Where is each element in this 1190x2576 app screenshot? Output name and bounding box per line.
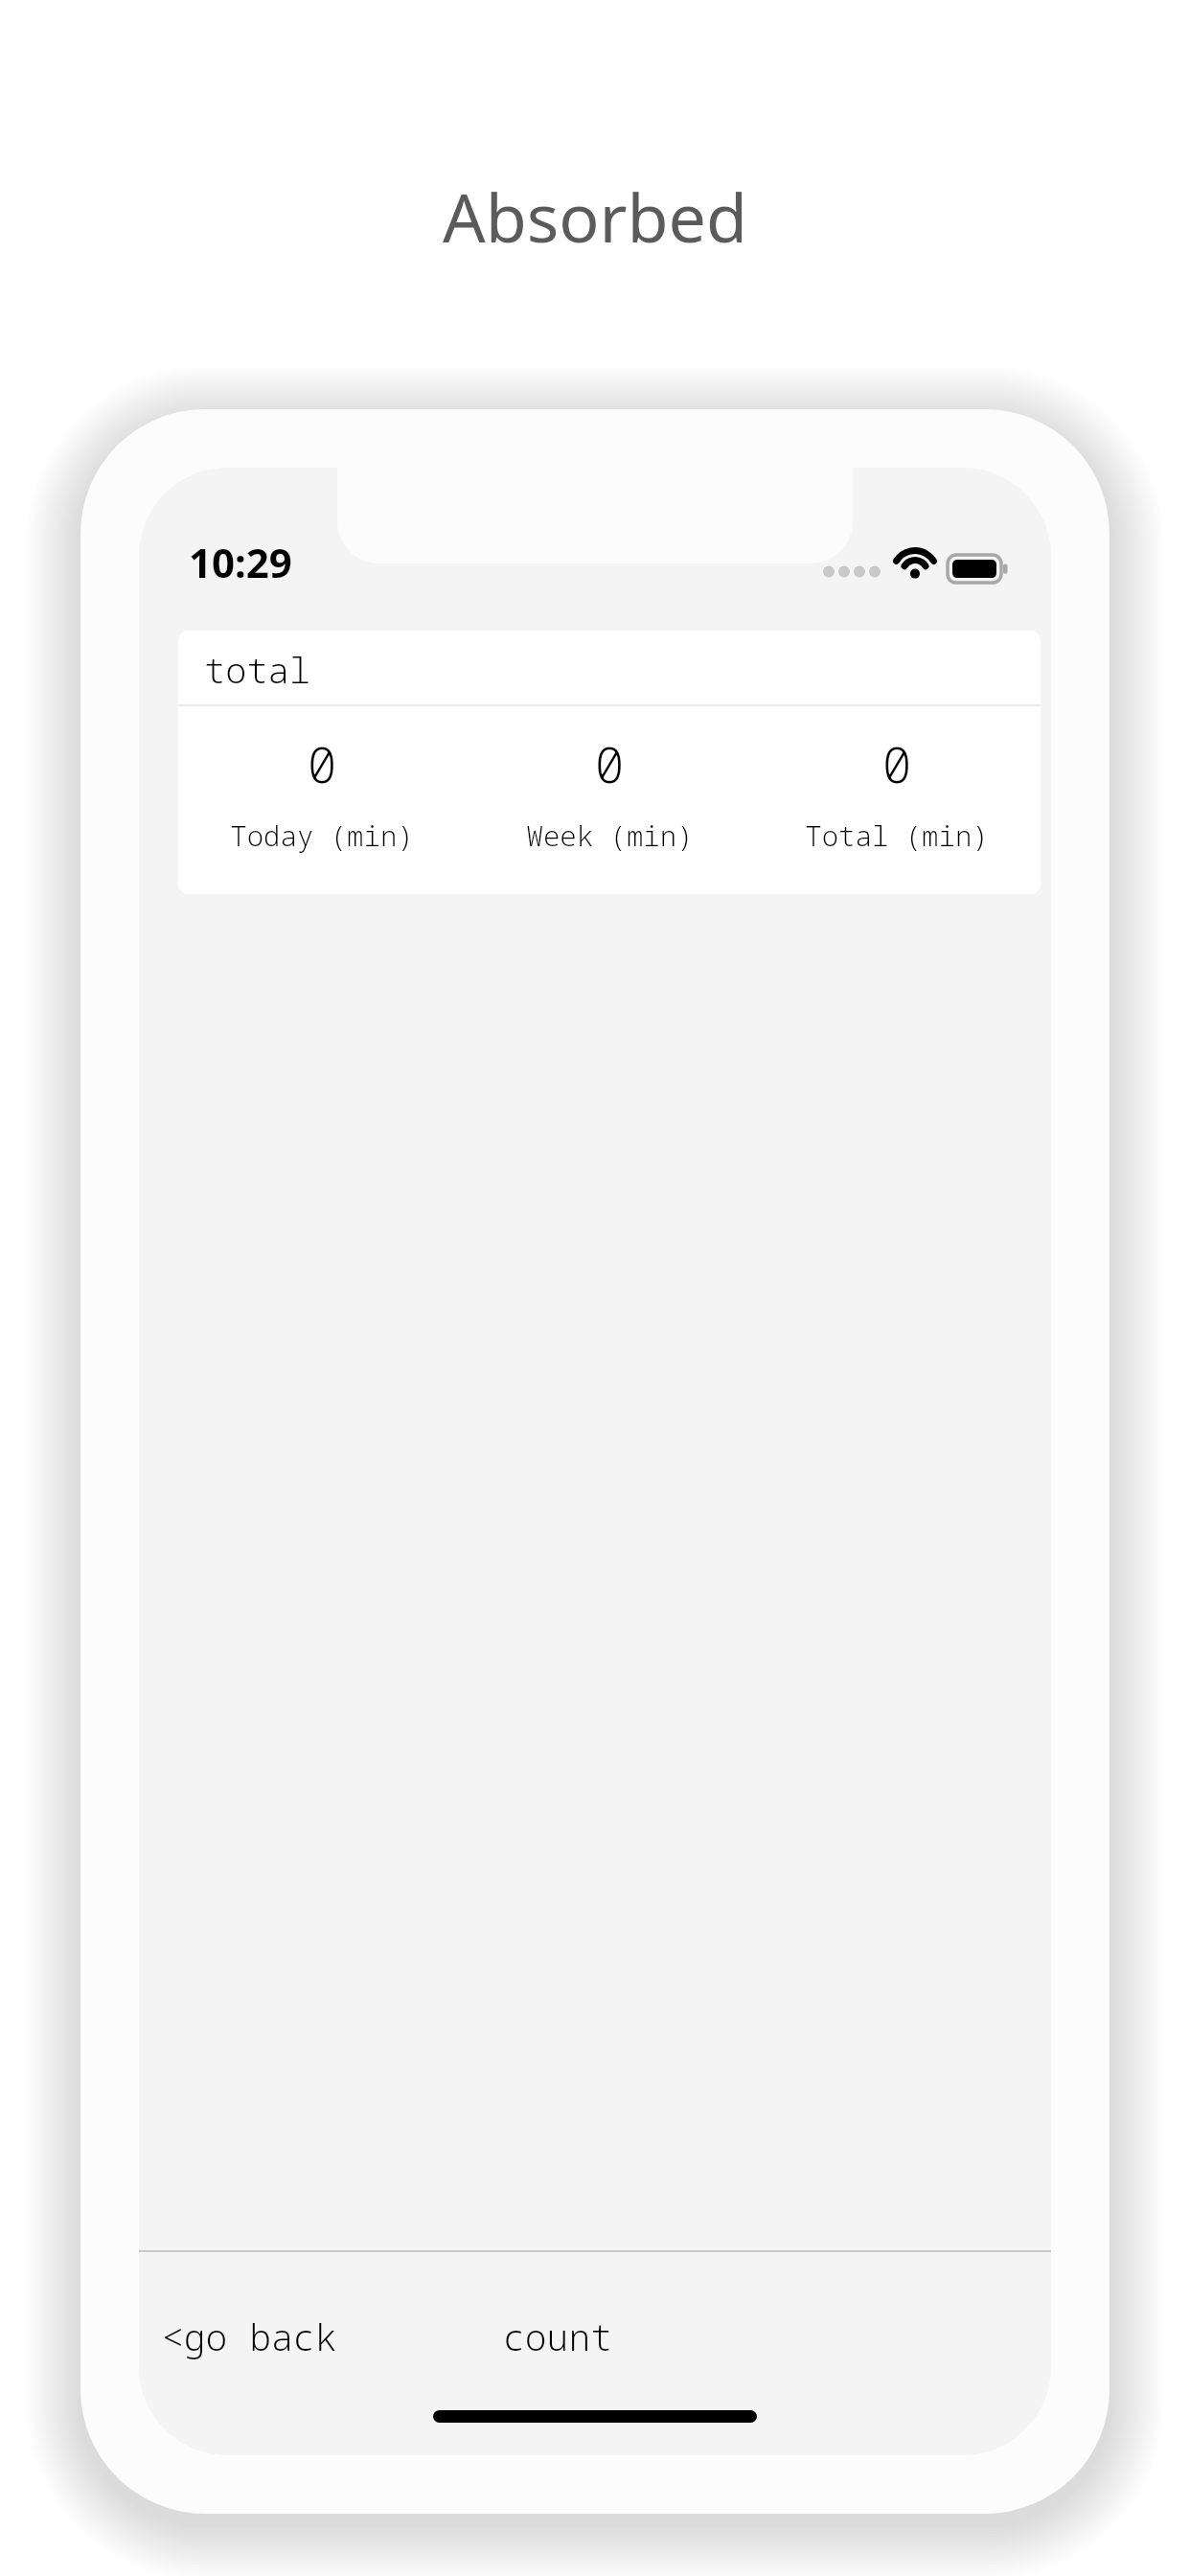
staticText: total [204, 645, 310, 693]
button[interactable]: 0 [466, 706, 753, 894]
staticText: Total (min) [805, 816, 989, 854]
staticText: count [503, 2311, 613, 2361]
staticText: Today (min) [230, 816, 414, 854]
staticText: 0 [594, 729, 625, 797]
other: Signal, Wi-Fi and battery status [823, 533, 1015, 586]
button[interactable]: count [490, 2300, 627, 2373]
staticText: <go back [162, 2311, 337, 2361]
staticText: 0 [307, 729, 337, 797]
staticText: 0 [881, 729, 912, 797]
button[interactable]: <go back [149, 2300, 351, 2373]
staticText: Absorbed [0, 171, 1190, 262]
staticText: 10:29 [189, 535, 292, 589]
button[interactable]: 0 [753, 706, 1041, 894]
button[interactable]: 0 [178, 706, 466, 894]
staticText: Week (min) [526, 816, 694, 854]
